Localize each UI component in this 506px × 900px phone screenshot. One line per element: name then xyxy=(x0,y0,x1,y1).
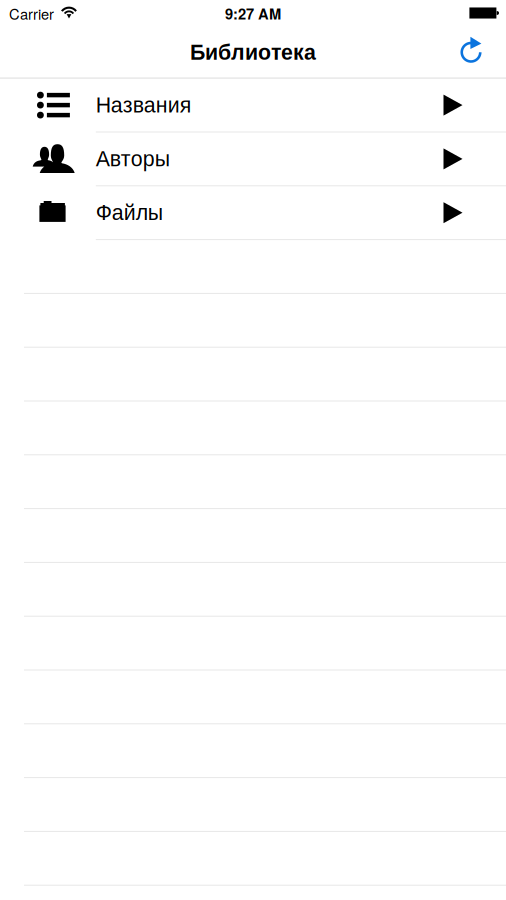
button[interactable]: Названия xyxy=(0,79,506,132)
button[interactable]: Refresh xyxy=(449,30,493,74)
staticText: Названия xyxy=(96,93,192,117)
button[interactable]: Авторы xyxy=(0,132,506,186)
staticText: Авторы xyxy=(96,147,170,171)
staticText: 9:27 AM xyxy=(225,3,281,24)
staticText: Файлы xyxy=(96,201,163,225)
button[interactable]: Файлы xyxy=(0,186,506,240)
staticText: Carrier xyxy=(9,3,54,24)
staticText: Библиотека xyxy=(190,40,316,64)
